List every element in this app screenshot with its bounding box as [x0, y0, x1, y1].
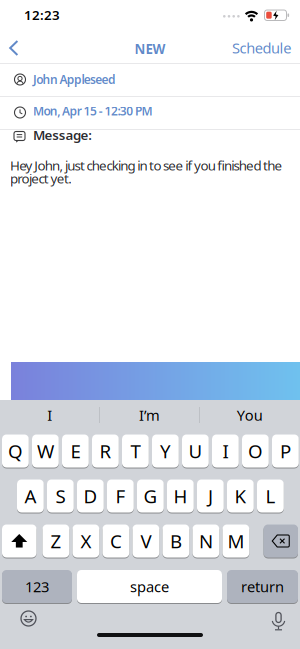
- button[interactable]: Schedule: [222, 32, 300, 63]
- staticText: You: [237, 405, 263, 425]
- staticText: Message:: [33, 126, 92, 144]
- button[interactable]: A: [17, 479, 44, 513]
- staticText: P: [280, 439, 291, 463]
- staticText: Y: [160, 439, 171, 463]
- button[interactable]: V: [132, 524, 159, 558]
- button[interactable]: C: [102, 524, 129, 558]
- button[interactable]: L: [257, 479, 284, 513]
- staticText: Schedule: [232, 38, 291, 57]
- staticText: I: [47, 405, 52, 425]
- button[interactable]: return: [227, 569, 298, 603]
- button[interactable]: B: [162, 524, 189, 558]
- button[interactable]: H: [167, 479, 194, 513]
- button[interactable]: M: [222, 524, 249, 558]
- button[interactable]: John Appleseed: [0, 64, 300, 96]
- button[interactable]: Emoji: [13, 603, 44, 634]
- staticText: N: [199, 529, 213, 553]
- staticText: John Appleseed: [33, 71, 116, 87]
- button[interactable]: P: [272, 434, 299, 468]
- staticText: 12:23: [24, 6, 60, 24]
- staticText: I: [222, 439, 228, 463]
- button[interactable]: 123: [2, 569, 72, 603]
- button[interactable]: N: [192, 524, 219, 558]
- button[interactable]: E: [62, 434, 89, 468]
- button[interactable]: S: [47, 479, 74, 513]
- staticText: C: [110, 529, 122, 553]
- button[interactable]: K: [227, 479, 254, 513]
- staticText: Q: [8, 439, 23, 463]
- staticText: L: [265, 484, 275, 508]
- button[interactable]: space: [77, 569, 222, 603]
- button[interactable]: J: [197, 479, 224, 513]
- staticText: V: [140, 529, 151, 553]
- staticText: X: [80, 529, 91, 553]
- staticText: return: [241, 577, 284, 596]
- staticText: Mon, Apr 15 - 12:30 PM: [33, 103, 152, 119]
- staticText: M: [227, 529, 244, 553]
- button[interactable]: D: [77, 479, 104, 513]
- button[interactable]: W: [32, 434, 59, 468]
- button[interactable]: Shift: [2, 524, 36, 558]
- staticText: D: [83, 484, 97, 508]
- staticText: A: [24, 484, 36, 508]
- staticText: F: [115, 484, 125, 508]
- staticText: E: [70, 439, 80, 463]
- staticText: S: [55, 484, 65, 508]
- staticText: project yet.: [10, 169, 72, 187]
- button[interactable]: Back: [0, 32, 29, 64]
- button[interactable]: Z: [42, 524, 69, 558]
- staticText: W: [37, 439, 54, 463]
- button[interactable]: T: [122, 434, 149, 468]
- staticText: H: [173, 484, 187, 508]
- staticText: J: [208, 484, 213, 508]
- staticText: O: [248, 439, 263, 463]
- button[interactable]: Delete: [263, 524, 298, 558]
- button[interactable]: U: [182, 434, 209, 468]
- button[interactable]: R: [92, 434, 119, 468]
- staticText: G: [143, 484, 157, 508]
- button[interactable]: Q: [2, 434, 29, 468]
- button[interactable]: You: [200, 400, 300, 430]
- button[interactable]: I’m: [100, 400, 199, 430]
- staticText: T: [130, 439, 140, 463]
- staticText: space: [130, 577, 169, 596]
- staticText: I’m: [139, 405, 160, 425]
- staticText: R: [99, 439, 111, 463]
- button[interactable]: I: [212, 434, 239, 468]
- staticText: B: [170, 529, 182, 553]
- staticText: NEW: [134, 40, 165, 58]
- button[interactable]: Dictate: [264, 603, 293, 637]
- button[interactable]: Y: [152, 434, 179, 468]
- button[interactable]: F: [107, 479, 134, 513]
- staticText: Z: [50, 529, 61, 553]
- staticText: K: [234, 484, 246, 508]
- staticText: 123: [25, 577, 49, 596]
- button[interactable]: I: [0, 400, 99, 430]
- button[interactable]: Mon, Apr 15 - 12:30 PM: [0, 97, 300, 129]
- staticText: Hey John, just checking in to see if you…: [10, 156, 283, 174]
- button[interactable]: G: [137, 479, 164, 513]
- button[interactable]: O: [242, 434, 269, 468]
- button[interactable]: X: [72, 524, 99, 558]
- staticText: U: [188, 439, 202, 463]
